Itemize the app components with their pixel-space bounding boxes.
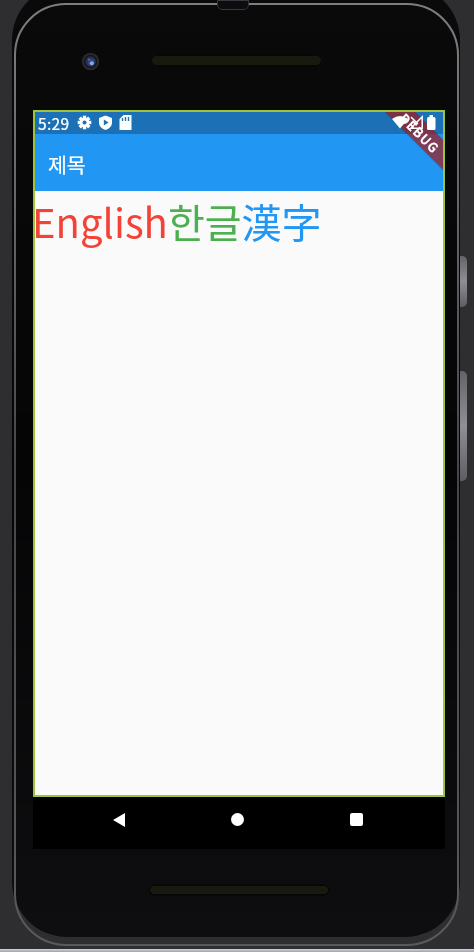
staticText: 제목 [48,149,86,179]
button[interactable] [69,797,169,842]
staticText: 5:29 [38,112,70,134]
button[interactable] [187,797,287,842]
staticText: DEBUG [397,110,445,157]
staticText: English한글漢字 [33,192,322,250]
button[interactable] [306,797,406,842]
